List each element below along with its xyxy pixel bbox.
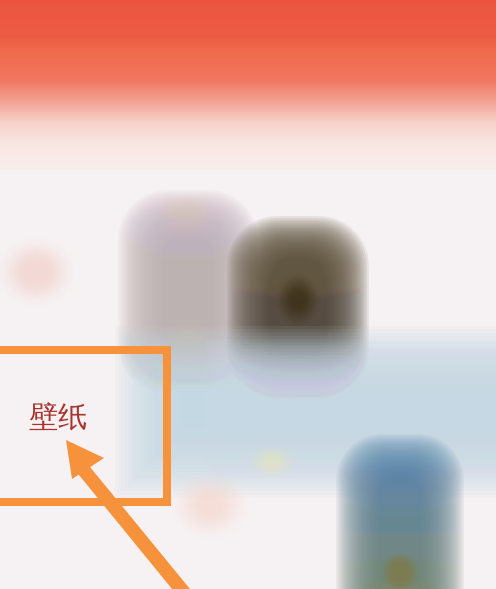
staticText: 壁纸 <box>29 399 87 435</box>
